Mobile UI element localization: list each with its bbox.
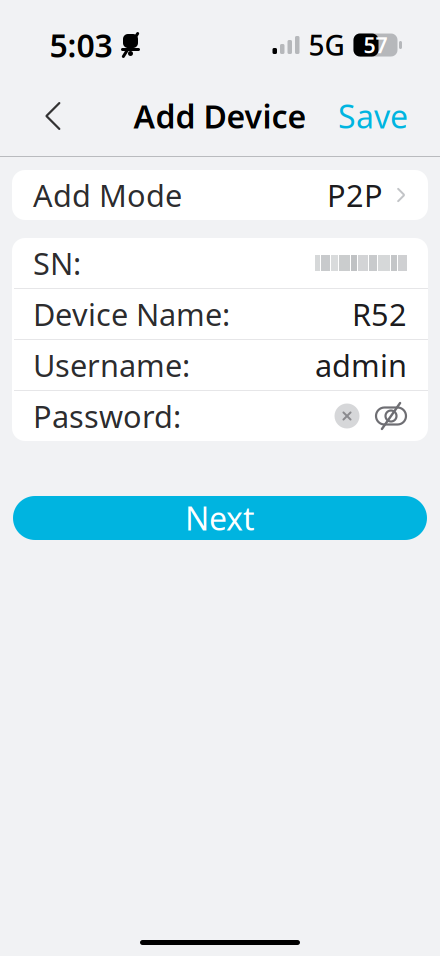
staticText: Add Mode [33,175,182,215]
button[interactable]: Next [13,496,427,540]
staticText: admin [315,345,407,385]
staticText: SN: [33,243,81,283]
staticText: Add Device [133,95,306,137]
staticText: P2P [327,175,383,215]
button[interactable]: Save [332,85,414,147]
staticText: Device Name: [33,294,230,334]
staticText: Save [338,95,408,137]
staticText: 57 [363,31,387,59]
button[interactable]: Back [22,85,84,147]
button[interactable]: Show password [375,401,407,431]
button[interactable]: Clear password [332,401,362,431]
staticText: 5:03 [49,24,112,66]
staticText: Next [185,497,255,539]
staticText: R52 [352,294,407,334]
staticText: Password: [33,396,181,436]
staticText: 5G [308,26,344,64]
staticText: Username: [33,345,190,385]
button[interactable]: Add Mode [12,170,428,220]
